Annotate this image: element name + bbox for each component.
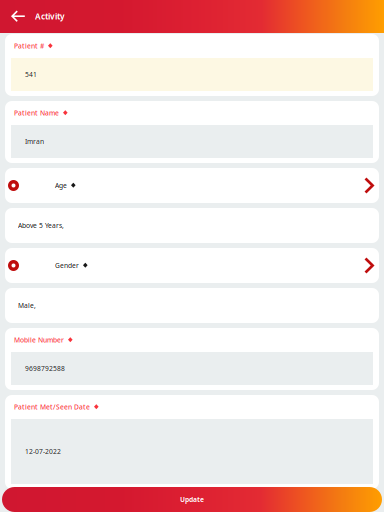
staticText: Update xyxy=(180,495,204,504)
staticText: Male, xyxy=(18,301,36,310)
staticText: Patient Name xyxy=(14,109,59,117)
staticText: Imran xyxy=(25,137,44,146)
staticText: Above 5 Years, xyxy=(18,221,64,230)
button[interactable]: Gender xyxy=(5,248,379,283)
button[interactable]: Update xyxy=(2,487,382,512)
staticText: Patient Met/Seen Date xyxy=(14,403,90,411)
staticText: 12-07-2022 xyxy=(25,447,61,456)
staticText: 9698792588 xyxy=(25,364,65,373)
button[interactable]: Age xyxy=(5,168,379,203)
staticText: Patient # xyxy=(14,42,44,50)
staticText: 541 xyxy=(25,70,37,79)
staticText: Activity xyxy=(35,11,65,22)
staticText: Mobile Number xyxy=(14,336,64,344)
staticText: Gender xyxy=(55,261,79,270)
staticText: Age xyxy=(55,181,67,190)
button[interactable]: Back xyxy=(0,0,35,33)
